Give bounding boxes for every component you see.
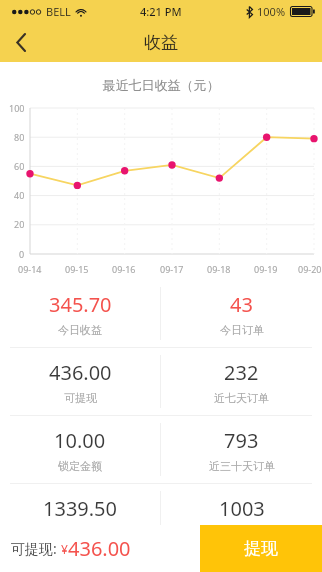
staticText: ¥ (61, 541, 68, 557)
button[interactable]: 1339.50 (0, 484, 160, 551)
staticText: 100 (9, 102, 25, 114)
staticText: 09-16 (112, 263, 136, 275)
staticText: 100% (257, 4, 286, 19)
staticText: 09-18 (207, 263, 231, 275)
button[interactable]: 提现 (200, 525, 322, 572)
staticText: 09-20 (298, 263, 322, 275)
staticText: 今日订单 (220, 323, 264, 337)
staticText: 40 (14, 189, 25, 201)
button[interactable]: 436.00 (0, 348, 160, 415)
staticText: 09-15 (65, 263, 89, 275)
staticText: 最近七日收益（元） (0, 77, 322, 93)
staticText: 收益 (144, 32, 178, 53)
staticText: 232 (224, 359, 259, 386)
staticText: 436.00 (68, 535, 131, 562)
staticText: 可提现 (64, 391, 97, 405)
staticText: 今日收益 (58, 323, 102, 337)
staticText: 20 (14, 218, 25, 230)
staticText: 提现 (244, 538, 278, 559)
staticText: 近七天订单 (214, 391, 269, 405)
button[interactable]: 232 (161, 348, 322, 415)
staticText: 436.00 (49, 359, 112, 386)
staticText: 锁定金额 (58, 459, 102, 473)
staticText: BELL (46, 4, 71, 19)
staticText: 近三十天订单 (209, 459, 275, 473)
staticText: 10.00 (54, 427, 106, 454)
button[interactable]: 43 (161, 280, 322, 347)
staticText: 可提现: (11, 539, 61, 558)
button[interactable]: 793 (161, 416, 322, 483)
staticText: 793 (224, 427, 259, 454)
staticText: 4:21 PM (140, 4, 182, 19)
staticText: 09-14 (18, 263, 42, 275)
staticText: 345.70 (49, 291, 112, 318)
button[interactable]: 1003 (161, 484, 322, 551)
staticText: 09-19 (254, 263, 278, 275)
staticText: 09-17 (160, 263, 184, 275)
button[interactable]: 10.00 (0, 416, 160, 483)
staticText: 累计订单 (220, 527, 264, 541)
staticText: 1339.50 (43, 495, 117, 522)
button[interactable]: Back (0, 22, 42, 62)
staticText: 43 (230, 291, 253, 318)
button[interactable]: 345.70 (0, 280, 160, 347)
staticText: 80 (14, 131, 25, 143)
staticText: 60 (14, 160, 25, 172)
staticText: 1003 (219, 495, 265, 522)
staticText: 0 (19, 248, 25, 260)
